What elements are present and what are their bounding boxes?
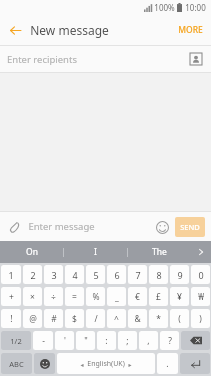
staticText: ': [64, 335, 66, 347]
button[interactable]: 0: [191, 265, 210, 284]
button[interactable]: Emoji keyboard: [34, 353, 55, 374]
button[interactable]: The: [128, 241, 191, 263]
staticText: €: [135, 291, 140, 303]
button[interactable]: +: [1, 287, 21, 306]
button[interactable]: ): [191, 309, 210, 328]
staticText: (: [178, 313, 181, 325]
button[interactable]: 4: [65, 265, 84, 284]
button[interactable]: Back: [0, 15, 30, 45]
staticText: :: [105, 335, 108, 347]
staticText: 9: [177, 269, 183, 281]
staticText: &: [134, 313, 141, 325]
button[interactable]: #: [44, 309, 63, 328]
button[interactable]: Enter recipients: [0, 46, 211, 72]
staticText: .: [166, 358, 169, 370]
button[interactable]: *: [149, 309, 168, 328]
staticText: ?: [168, 335, 172, 347]
button[interactable]: Enter: [180, 353, 210, 374]
button[interactable]: 3: [44, 265, 63, 284]
button[interactable]: 7: [128, 265, 147, 284]
button[interactable]: _: [107, 287, 126, 306]
staticText: /: [94, 313, 98, 325]
button[interactable]: On: [0, 241, 63, 263]
button[interactable]: 5: [86, 265, 105, 284]
button[interactable]: Add recipient from contacts: [188, 51, 204, 67]
button[interactable]: ": [76, 331, 95, 350]
button[interactable]: @: [23, 309, 42, 328]
staticText: 5: [93, 269, 99, 281]
button[interactable]: 6: [107, 265, 126, 284]
button[interactable]: :: [97, 331, 116, 350]
button[interactable]: ABC: [1, 353, 32, 374]
staticText: ◂: [80, 361, 84, 368]
button[interactable]: Space, English (UK): [57, 353, 155, 374]
staticText: %: [92, 291, 100, 303]
button[interactable]: Enter message: [28, 220, 153, 233]
staticText: Enter recipients: [7, 53, 77, 66]
staticText: 6: [114, 269, 120, 281]
button[interactable]: =: [65, 287, 84, 306]
button[interactable]: MORE: [170, 15, 211, 45]
staticText: 100%: [154, 2, 175, 13]
staticText: ¥: [177, 291, 182, 303]
staticText: ): [199, 313, 202, 325]
button[interactable]: ,: [139, 331, 158, 350]
staticText: +: [9, 291, 14, 303]
button[interactable]: SEND: [175, 217, 205, 237]
staticText: 0: [198, 269, 204, 281]
button[interactable]: Emoji: [153, 218, 171, 236]
staticText: 8: [156, 269, 162, 281]
staticText: ×: [30, 291, 35, 303]
staticText: On: [26, 246, 38, 258]
button[interactable]: /: [86, 309, 105, 328]
button[interactable]: 2: [23, 265, 42, 284]
staticText: !: [10, 313, 13, 325]
button[interactable]: ?: [160, 331, 179, 350]
button[interactable]: ': [55, 331, 74, 350]
button[interactable]: €: [128, 287, 147, 306]
staticText: 2: [30, 269, 36, 281]
button[interactable]: £: [149, 287, 168, 306]
button[interactable]: &: [128, 309, 147, 328]
staticText: _: [115, 291, 119, 303]
button[interactable]: ÷: [44, 287, 63, 306]
staticText: I: [94, 246, 97, 258]
staticText: New message: [30, 22, 109, 38]
staticText: ▸: [128, 361, 132, 368]
staticText: Enter message: [28, 220, 95, 233]
button[interactable]: (: [170, 309, 189, 328]
button[interactable]: ×: [23, 287, 42, 306]
button[interactable]: $: [65, 309, 84, 328]
staticText: MORE: [178, 24, 203, 36]
staticText: $: [72, 313, 77, 325]
button[interactable]: More suggestions: [191, 241, 211, 263]
staticText: £: [156, 291, 161, 303]
staticText: ;: [126, 335, 129, 347]
button[interactable]: 1/2: [1, 331, 31, 350]
staticText: 1/2: [10, 336, 22, 346]
staticText: SEND: [180, 222, 200, 232]
staticText: 10:00: [185, 2, 206, 13]
button[interactable]: ;: [118, 331, 137, 350]
button[interactable]: ₩: [191, 287, 210, 306]
button[interactable]: Attach: [6, 218, 24, 236]
staticText: ^: [114, 313, 119, 325]
button[interactable]: %: [86, 287, 105, 306]
staticText: 3: [51, 269, 57, 281]
button[interactable]: 8: [149, 265, 168, 284]
staticText: 1: [8, 269, 14, 281]
staticText: ÷: [51, 291, 56, 303]
staticText: 7: [135, 269, 141, 281]
button[interactable]: !: [1, 309, 21, 328]
button[interactable]: .: [157, 353, 178, 374]
staticText: @: [29, 313, 37, 325]
button[interactable]: Delete: [181, 331, 210, 350]
staticText: 4: [72, 269, 78, 281]
button[interactable]: I: [64, 241, 127, 263]
staticText: English(UK): [87, 359, 125, 369]
button[interactable]: 1: [1, 265, 21, 284]
button[interactable]: ¥: [170, 287, 189, 306]
button[interactable]: -: [33, 331, 53, 350]
button[interactable]: 9: [170, 265, 189, 284]
button[interactable]: ^: [107, 309, 126, 328]
